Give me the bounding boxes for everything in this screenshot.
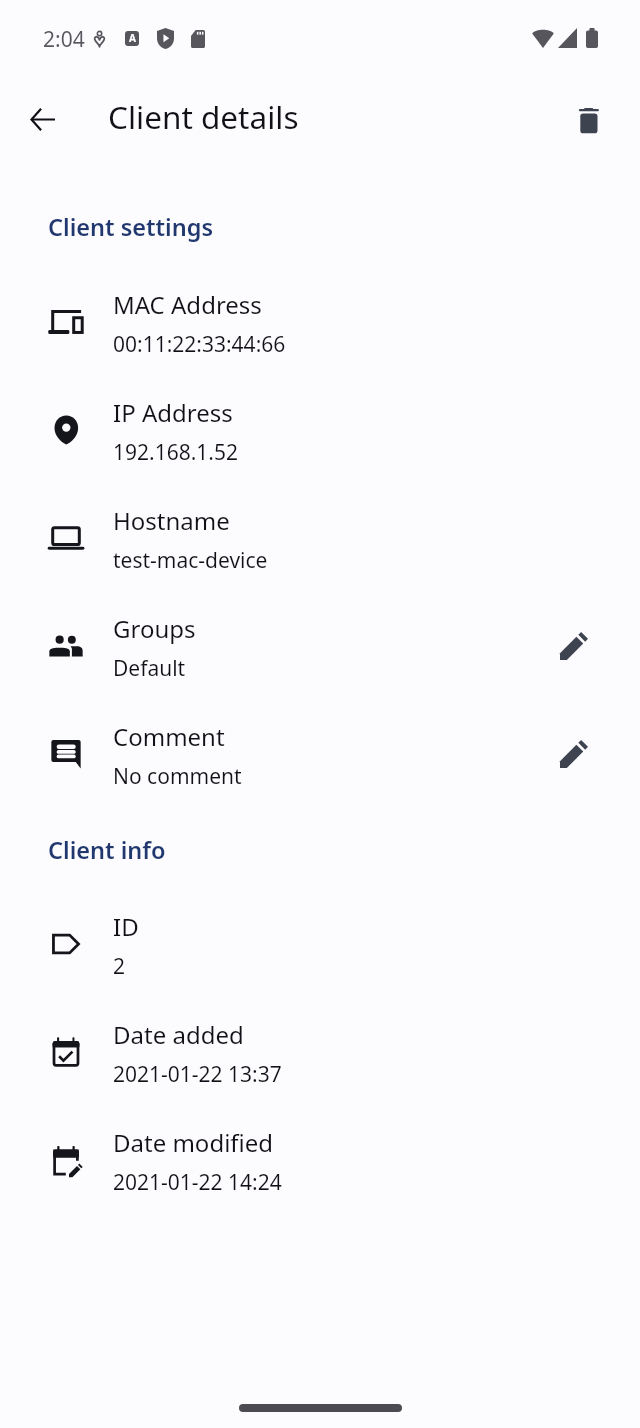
staticText: Hostname [113, 504, 230, 537]
staticText: test-mac-device [113, 546, 268, 575]
button[interactable]: Comment [0, 694, 640, 802]
staticText: Client details [108, 95, 299, 138]
staticText: Client settings [48, 211, 214, 243]
staticText: 00:11:22:33:44:66 [113, 330, 286, 359]
staticText: Date added [113, 1018, 244, 1051]
button[interactable]: Date modified [0, 1100, 640, 1208]
staticText: IP Address [113, 396, 233, 429]
staticText: No comment [113, 762, 242, 791]
button[interactable]: Edit Comment [548, 728, 600, 780]
staticText: Client info [48, 834, 166, 866]
button[interactable]: Delete [562, 95, 614, 147]
staticText: A [129, 31, 136, 45]
button[interactable]: Back [17, 93, 69, 145]
button[interactable]: IP Address [0, 370, 640, 478]
button[interactable]: Hostname [0, 478, 640, 586]
staticText: MAC Address [113, 288, 262, 321]
staticText: 2:04 [43, 25, 85, 54]
button[interactable]: ID [0, 884, 640, 992]
button[interactable]: Date added [0, 992, 640, 1100]
staticText: Comment [113, 720, 225, 753]
staticText: 2021-01-22 13:37 [113, 1060, 282, 1089]
staticText: 2021-01-22 14:24 [113, 1168, 282, 1197]
button[interactable]: MAC Address [0, 262, 640, 370]
staticText: Default [113, 654, 186, 683]
staticText: Date modified [113, 1126, 274, 1159]
staticText: ID [113, 910, 139, 943]
staticText: Groups [113, 612, 196, 645]
button[interactable]: Groups [0, 586, 640, 694]
staticText: 2 [113, 952, 126, 981]
button[interactable]: Edit Groups [548, 620, 600, 672]
staticText: 192.168.1.52 [113, 438, 238, 467]
